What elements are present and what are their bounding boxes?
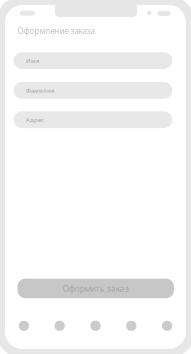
button[interactable]: Favorites — [126, 321, 136, 331]
button[interactable]: Имя — [14, 52, 172, 69]
staticText: Оформление заказа — [17, 26, 94, 36]
button[interactable]: Фамилия — [14, 82, 172, 99]
button[interactable]: Search — [55, 321, 65, 331]
button[interactable]: Cart — [90, 321, 101, 331]
staticText: Имя — [26, 56, 39, 65]
button[interactable]: Home — [19, 321, 29, 331]
button[interactable]: Адрес — [14, 111, 172, 128]
staticText: Фамилия — [26, 86, 54, 94]
staticText: Адрес — [26, 116, 44, 124]
staticText: Оформить заказ — [63, 283, 129, 294]
button[interactable]: Оформить заказ — [17, 279, 174, 298]
button[interactable]: Profile — [162, 321, 172, 331]
